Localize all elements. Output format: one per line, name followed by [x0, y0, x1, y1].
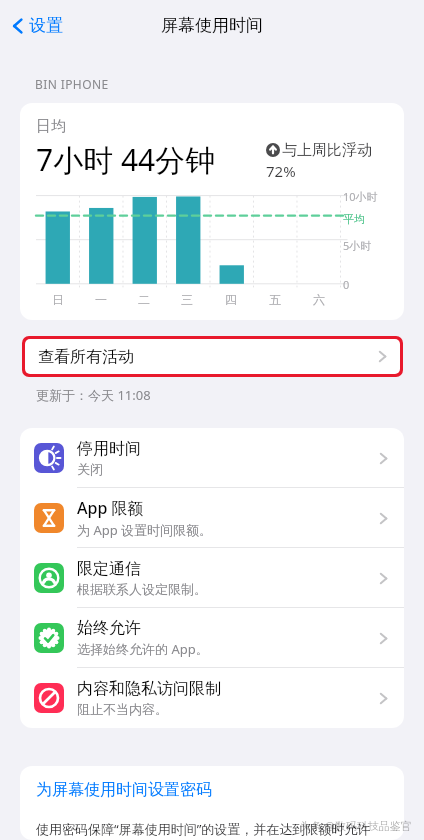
staticText: 查看所有活动: [38, 347, 378, 367]
staticText: 日均: [36, 117, 66, 136]
staticText: 四: [225, 292, 237, 307]
staticText: 内容和隐私访问限制: [77, 679, 221, 699]
staticText: 10小时: [343, 189, 378, 204]
staticText: 六: [313, 292, 325, 307]
staticText: 二: [138, 292, 150, 307]
staticText: 根据联系人设定限制。: [77, 581, 207, 597]
button[interactable]: 查看所有活动: [25, 339, 400, 374]
staticText: 0: [343, 277, 350, 292]
button[interactable]: 设置: [8, 11, 67, 40]
staticText: 一: [95, 292, 107, 307]
staticText: 停用时间: [77, 439, 141, 459]
staticText: 设置: [29, 15, 63, 36]
button[interactable]: 限定通信: [20, 548, 404, 608]
staticText: 更新于：今天 11:08: [36, 386, 151, 404]
button[interactable]: 始终允许: [20, 608, 404, 668]
button[interactable]: 停用时间: [20, 428, 404, 488]
staticText: 72%: [266, 161, 296, 181]
staticText: 5小时: [343, 238, 372, 253]
staticText: 阻止不当内容。: [77, 701, 168, 717]
staticText: App 限额: [77, 497, 144, 519]
staticText: 五: [269, 292, 281, 307]
staticText: 头条 @数码科技品鉴官: [300, 818, 412, 833]
staticText: BIN IPHONE: [35, 76, 109, 92]
staticText: 始终允许: [77, 618, 141, 638]
staticText: 与上周比浮动: [282, 141, 372, 160]
staticText: 7小时 44分钟: [36, 139, 216, 180]
staticText: 为 App 设置时间限额。: [77, 521, 213, 539]
staticText: 三: [181, 292, 193, 307]
staticText: 日: [52, 292, 64, 307]
staticText: 为屏幕使用时间设置密码: [36, 780, 212, 800]
staticText: 限定通信: [77, 559, 141, 579]
staticText: 使用密码保障“屏幕使用时间”的设置，并在达到限额时允许: [36, 820, 371, 838]
button[interactable]: 为屏幕使用时间设置密码: [20, 766, 404, 810]
staticText: 关闭: [77, 461, 103, 477]
button[interactable]: App 限额: [20, 488, 404, 548]
staticText: 选择始终允许的 App。: [77, 640, 209, 658]
staticText: 屏幕使用时间: [161, 15, 263, 36]
button[interactable]: 内容和隐私访问限制: [20, 668, 404, 728]
staticText: 平均: [343, 212, 365, 226]
